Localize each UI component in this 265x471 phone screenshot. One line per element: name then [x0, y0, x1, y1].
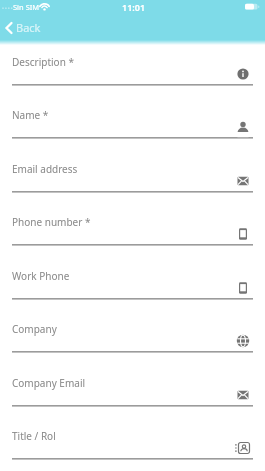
staticText: Work Phone [12, 269, 70, 283]
staticText: Sin SIM [13, 2, 40, 12]
staticText: Back [16, 20, 41, 35]
button[interactable]: Phone number * [0, 205, 265, 249]
button[interactable]: Back [0, 16, 60, 40]
button[interactable]: Company [0, 312, 265, 356]
staticText: Name * [12, 108, 49, 122]
button[interactable]: Name * [0, 98, 265, 142]
button[interactable]: Work Phone [0, 259, 265, 303]
staticText: Company Email [12, 376, 86, 390]
staticText: 11:01 [122, 1, 146, 13]
staticText: Title / Rol [12, 429, 56, 443]
button[interactable]: Email address [0, 152, 265, 196]
staticText: Phone number * [12, 215, 91, 229]
staticText: Description * [12, 55, 74, 69]
button[interactable]: Company Email [0, 366, 265, 410]
button[interactable]: Title / Rol [0, 419, 265, 463]
button[interactable]: Description * [0, 45, 265, 89]
staticText: Email address [12, 162, 78, 176]
staticText: Company [12, 322, 57, 336]
